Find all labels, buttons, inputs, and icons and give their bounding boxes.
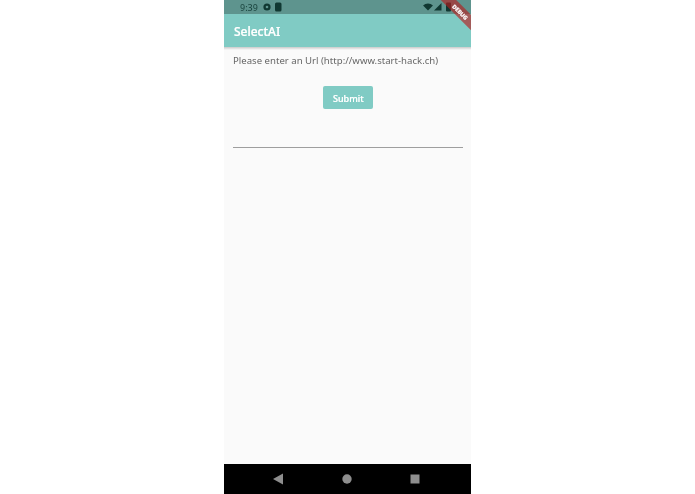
staticText: SelectAI [234, 23, 281, 39]
staticText: Please enter an Url (http://www.start-ha… [233, 54, 439, 67]
staticText: Submit [333, 92, 364, 104]
button[interactable] [224, 464, 307, 494]
button[interactable] [389, 464, 471, 494]
staticText: DEBUG [451, 3, 470, 21]
button[interactable] [307, 464, 389, 494]
button[interactable]: Submit [323, 86, 373, 109]
staticText: 9:39 [240, 1, 258, 13]
